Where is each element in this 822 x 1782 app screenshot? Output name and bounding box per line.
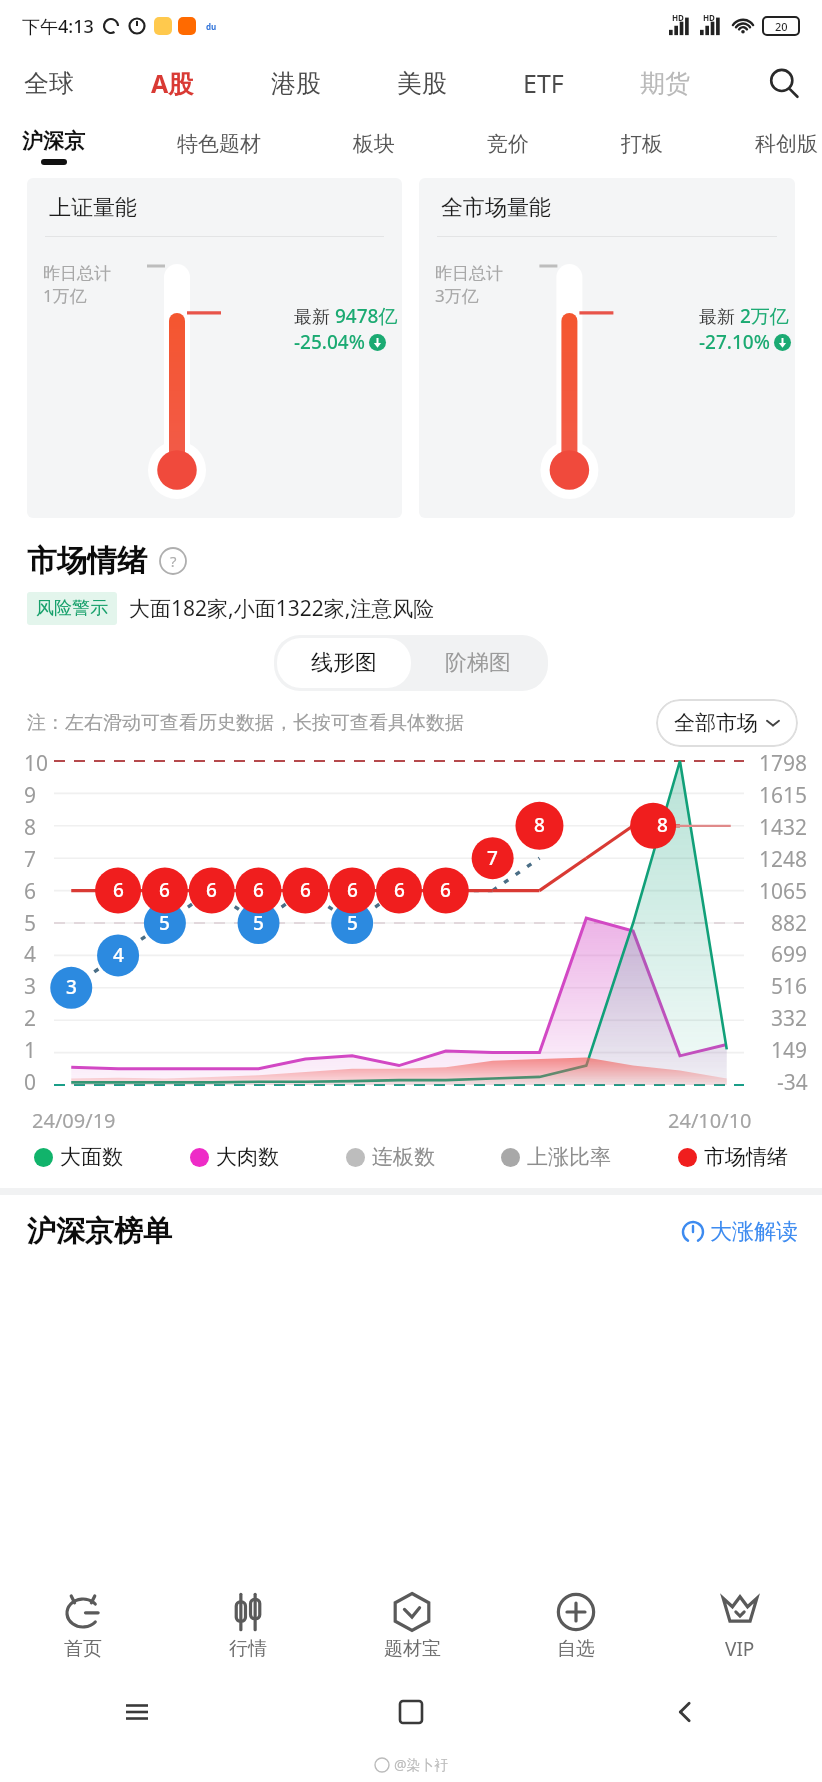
button[interactable]: ETF — [521, 66, 566, 100]
staticText: 风险警示 — [36, 597, 108, 620]
staticText: 大涨解读 — [710, 1218, 798, 1246]
staticText: 7 — [487, 845, 498, 871]
button[interactable]: 线形图 — [311, 649, 377, 677]
staticText: 2 — [24, 1004, 37, 1033]
staticText: 线形图 — [311, 649, 377, 677]
staticText: 下午4:13 — [22, 14, 94, 39]
staticText: -27.10% — [699, 329, 770, 355]
staticText: 6 — [440, 877, 451, 903]
staticText: 4 — [24, 940, 37, 969]
button[interactable]: 行情 — [165, 1570, 330, 1682]
button[interactable]: 竞价 — [487, 131, 529, 162]
staticText: 3万亿 — [435, 284, 479, 307]
staticText: 昨日总计 — [43, 263, 111, 284]
staticText: 1065 — [759, 877, 808, 906]
staticText: 5 — [159, 910, 170, 936]
staticText: 6 — [300, 877, 311, 903]
button[interactable]: Search — [764, 63, 804, 103]
staticText: 0 — [24, 1068, 37, 1097]
staticText: 6 — [394, 877, 405, 903]
staticText: 8 — [534, 812, 545, 838]
button[interactable]: 首页 — [0, 1570, 165, 1682]
button[interactable]: Back — [665, 1692, 705, 1732]
staticText: 竞价 — [487, 131, 529, 157]
staticText: 8 — [24, 813, 37, 842]
staticText: HD — [672, 12, 684, 23]
staticText: 3 — [66, 974, 77, 1000]
staticText: 大面182家,小面1322家,注意风险 — [129, 594, 435, 623]
button[interactable]: 期货 — [638, 68, 692, 99]
staticText: 大肉数 — [216, 1144, 279, 1170]
staticText: 5 — [347, 910, 358, 936]
staticText: 516 — [771, 972, 808, 1001]
button[interactable]: 大涨解读 — [681, 1218, 798, 1246]
button[interactable]: 大面数 — [34, 1144, 123, 1170]
staticText: 期货 — [640, 68, 690, 99]
staticText: -25.04% — [294, 329, 365, 355]
staticText: 最新 — [699, 304, 740, 329]
staticText: HD — [703, 12, 715, 23]
button[interactable]: 全部市场 — [674, 710, 780, 736]
staticText: 最新 — [294, 304, 335, 329]
button[interactable]: 美股 — [395, 68, 449, 99]
staticText: 5 — [24, 909, 37, 938]
staticText: 市场情绪 — [704, 1144, 788, 1170]
button[interactable]: VIP — [658, 1570, 822, 1682]
button[interactable]: A股 — [149, 66, 196, 100]
staticText: 昨日总计 — [435, 263, 503, 284]
staticText: 连板数 — [372, 1144, 435, 1170]
staticText: 打板 — [621, 131, 663, 157]
staticText: 1 — [24, 1036, 37, 1065]
button[interactable]: 自选 — [494, 1570, 658, 1682]
staticText: A股 — [151, 66, 194, 100]
staticText: 1615 — [759, 781, 808, 810]
staticText: 全市场量能 — [441, 194, 551, 222]
staticText: du — [206, 21, 217, 32]
staticText: 24/10/10 — [668, 1107, 752, 1134]
staticText: 9478亿 — [335, 303, 398, 329]
staticText: 149 — [771, 1036, 808, 1065]
button[interactable]: 题材宝 — [330, 1570, 494, 1682]
staticText: 20 — [775, 19, 788, 34]
staticText: 港股 — [271, 68, 321, 99]
button[interactable]: 上证量能 — [27, 178, 402, 518]
button[interactable]: 科创版 — [755, 131, 818, 162]
staticText: 阶梯图 — [445, 649, 511, 677]
staticText: 板块 — [353, 131, 395, 157]
staticText: 8 — [657, 812, 668, 838]
staticText: 上证量能 — [49, 194, 137, 222]
button[interactable]: Home — [391, 1692, 431, 1732]
button[interactable]: 打板 — [621, 131, 663, 162]
staticText: 7 — [24, 845, 37, 874]
button[interactable]: 特色题材 — [177, 131, 261, 162]
button[interactable]: 阶梯图 — [445, 649, 511, 677]
staticText: 4 — [113, 942, 124, 968]
staticText: 沪深京榜单 — [27, 1213, 172, 1250]
staticText: 10 — [24, 749, 49, 778]
staticText: ? — [170, 551, 177, 571]
staticText: 332 — [771, 1004, 808, 1033]
button[interactable]: 全球 — [22, 68, 76, 99]
staticText: 882 — [771, 909, 808, 938]
staticText: 全部市场 — [674, 710, 758, 736]
button[interactable]: Recents — [117, 1692, 157, 1732]
staticText: 2万亿 — [740, 303, 789, 329]
staticText: 5 — [253, 910, 264, 936]
button[interactable]: 港股 — [269, 68, 323, 99]
button[interactable]: 大肉数 — [190, 1144, 279, 1170]
staticText: 首页 — [64, 1637, 102, 1661]
button[interactable]: 沪深京 — [22, 128, 85, 165]
staticText: 沪深京 — [22, 128, 85, 154]
staticText: 市场情绪 — [27, 542, 147, 580]
button[interactable]: 市场情绪 — [678, 1144, 788, 1170]
button[interactable]: 板块 — [353, 131, 395, 162]
button[interactable]: 全市场量能 — [419, 178, 795, 518]
button[interactable]: 连板数 — [346, 1144, 435, 1170]
staticText: 6 — [253, 877, 264, 903]
button[interactable]: 上涨比率 — [501, 1144, 611, 1170]
staticText: 1248 — [759, 845, 808, 874]
button[interactable]: 风险警示 — [36, 597, 108, 620]
staticText: @染卜衧 — [394, 1755, 449, 1774]
staticText: 1432 — [759, 813, 808, 842]
button[interactable]: Help — [159, 547, 187, 575]
